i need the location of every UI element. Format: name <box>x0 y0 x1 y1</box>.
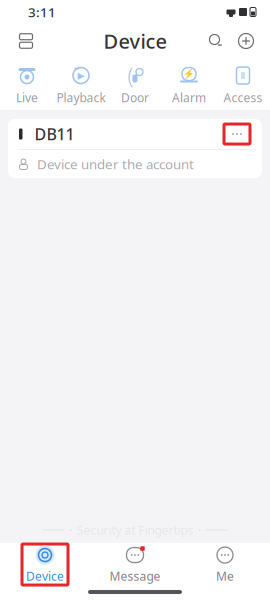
button[interactable]: Me <box>180 542 270 587</box>
staticText: Me <box>216 568 234 584</box>
button[interactable]: Search <box>201 24 231 58</box>
button[interactable]: ( <box>108 64 162 108</box>
staticText: Message <box>109 568 160 584</box>
button[interactable]: Layout <box>9 24 43 58</box>
button[interactable]: Add device <box>231 24 261 58</box>
staticText: Device <box>26 568 64 584</box>
button[interactable]: Live <box>0 64 54 108</box>
staticText: Device <box>103 28 166 54</box>
staticText: ▶ <box>77 70 84 81</box>
staticText: DB11 <box>34 123 74 145</box>
staticText: ⚡ <box>183 69 195 79</box>
button[interactable]: Message <box>90 542 180 587</box>
staticText: ( <box>127 61 133 90</box>
staticText: Live <box>16 89 38 105</box>
staticText: Door <box>121 89 149 105</box>
button[interactable]: Access <box>216 64 270 108</box>
staticText: Playback <box>56 89 105 105</box>
button[interactable]: ⚡ <box>162 64 216 108</box>
button[interactable]: More options <box>220 121 254 147</box>
staticText: 3:11 <box>28 3 56 21</box>
button[interactable]: Device <box>0 542 90 587</box>
staticText: Security at Fingertips <box>76 522 193 538</box>
staticText: Device under the account <box>37 155 194 173</box>
staticText: Alarm <box>172 89 206 105</box>
button[interactable]: ▶ <box>54 64 108 108</box>
staticText: Access <box>223 89 262 105</box>
